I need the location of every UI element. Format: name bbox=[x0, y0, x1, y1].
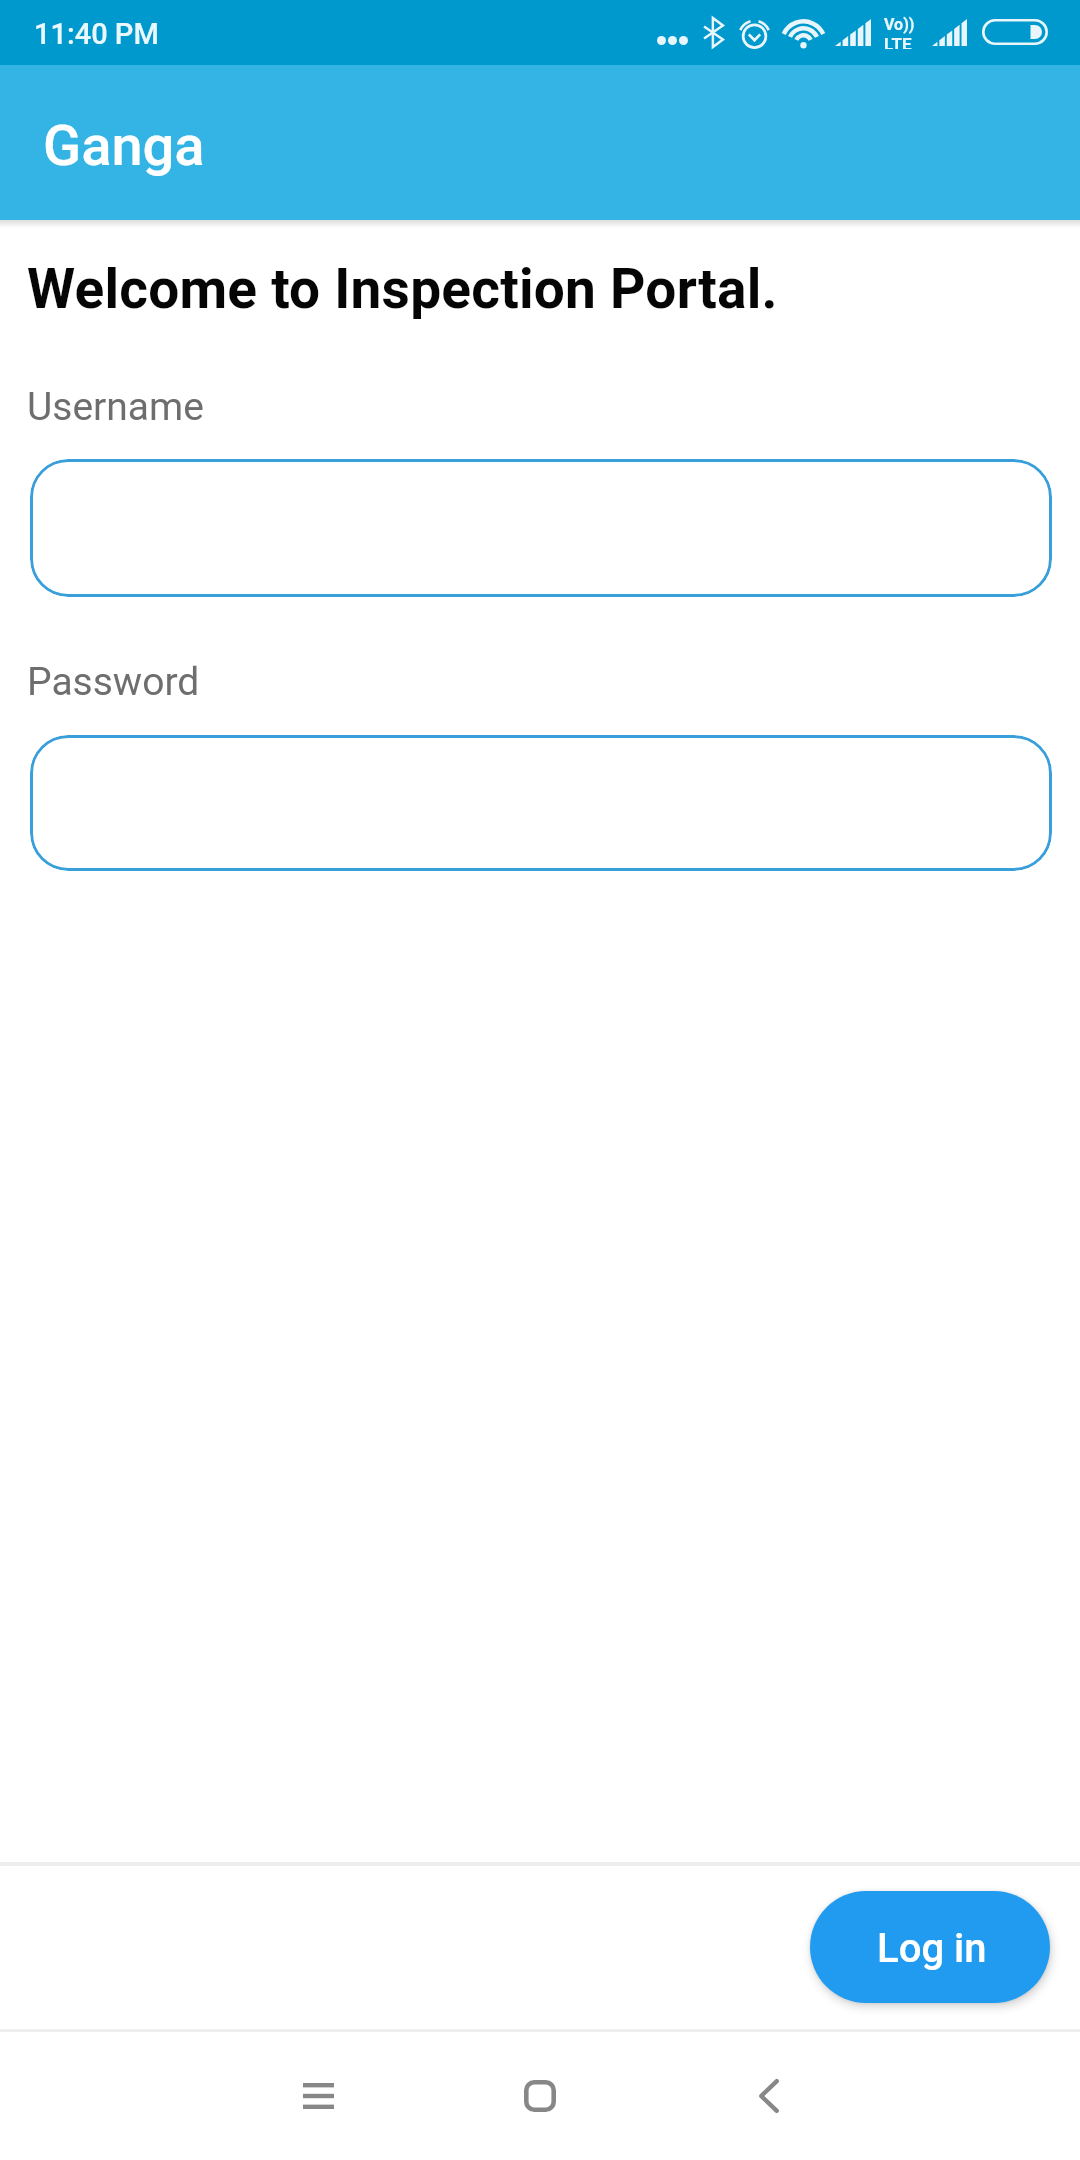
button[interactable] bbox=[30, 735, 1052, 871]
staticText: 11:40 PM bbox=[34, 17, 159, 51]
button[interactable]: Home bbox=[450, 2031, 630, 2160]
staticText: Password bbox=[27, 659, 200, 705]
button[interactable] bbox=[30, 459, 1052, 597]
staticText: Username bbox=[27, 384, 204, 430]
staticText: Welcome to Inspection Portal. bbox=[27, 257, 778, 321]
staticText: Ganga bbox=[43, 113, 205, 179]
button[interactable]: Back bbox=[679, 2031, 859, 2160]
staticText: Log in bbox=[877, 1925, 987, 1972]
button[interactable]: Recent apps bbox=[228, 2031, 408, 2160]
staticText: LTE bbox=[884, 34, 912, 49]
staticText: Vo)) bbox=[884, 15, 915, 34]
button[interactable]: Log in bbox=[810, 1891, 1050, 2003]
